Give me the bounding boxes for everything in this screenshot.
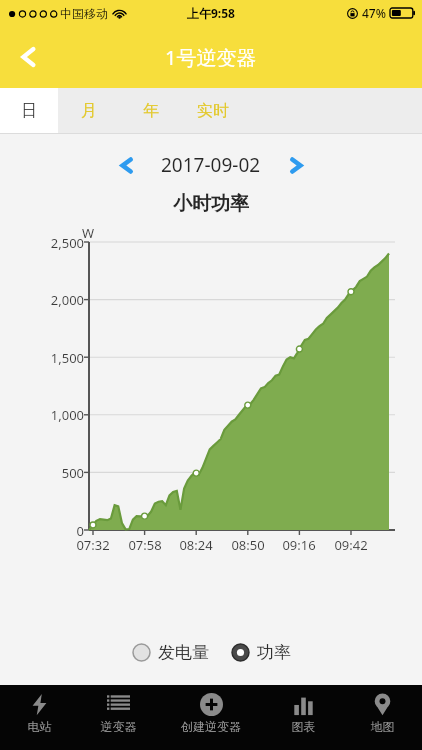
staticText: 2,000 [24, 291, 84, 309]
button[interactable]: 日 [0, 88, 58, 133]
button[interactable]: 图表 [264, 685, 343, 750]
staticText: 500 [24, 464, 84, 482]
button[interactable]: Back [6, 34, 52, 80]
staticText: 电站 [0, 719, 79, 734]
staticText: 发电量 [158, 642, 209, 663]
staticText: 47% [362, 5, 386, 21]
staticText: 1,500 [24, 349, 84, 367]
button[interactable]: 地图 [343, 685, 422, 750]
button[interactable]: 电站 [0, 685, 79, 750]
staticText: 1号逆变器 [165, 44, 257, 71]
staticText: 创建逆变器 [158, 719, 264, 734]
staticText: 07:58 [119, 536, 171, 554]
staticText: 日 [21, 101, 37, 121]
staticText: 2,500 [24, 234, 84, 252]
staticText: 08:50 [222, 536, 274, 554]
staticText: 图表 [264, 719, 343, 734]
button[interactable]: 月 [58, 88, 120, 133]
staticText: 09:16 [273, 536, 325, 554]
staticText: 月 [81, 101, 97, 121]
button[interactable]: 发电量 [132, 642, 209, 663]
staticText: 逆变器 [79, 719, 158, 734]
staticText: 功率 [257, 642, 291, 663]
button[interactable]: 年 [120, 88, 182, 133]
button[interactable]: Next day [277, 148, 315, 182]
staticText: W [82, 224, 95, 242]
staticText: 实时 [197, 101, 229, 121]
button[interactable]: 逆变器 [79, 685, 158, 750]
staticText: 0 [24, 522, 84, 540]
staticText: 年 [143, 101, 159, 121]
staticText: 07:32 [67, 536, 119, 554]
staticText: 09:42 [325, 536, 377, 554]
button[interactable]: 创建逆变器 [158, 685, 264, 750]
staticText: 1,000 [24, 406, 84, 424]
button[interactable]: 功率 [231, 642, 291, 663]
staticText: 上午9:58 [187, 5, 235, 21]
staticText: 小时功率 [0, 192, 422, 216]
button[interactable]: 实时 [182, 88, 244, 133]
staticText: 中国移动 [60, 6, 108, 21]
staticText: 08:24 [170, 536, 222, 554]
staticText: 2017-09-02 [161, 152, 261, 178]
staticText: 地图 [343, 719, 422, 734]
button[interactable]: Previous day [107, 148, 145, 182]
